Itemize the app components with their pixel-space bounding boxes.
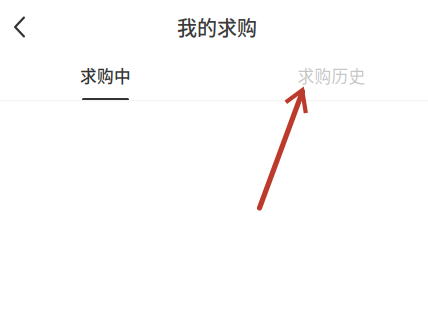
staticText: 求购中 (80, 63, 131, 88)
button[interactable]: 求购中 (30, 54, 180, 100)
staticText: 求购历史 (297, 63, 365, 88)
button[interactable]: 求购历史 (256, 54, 406, 100)
button[interactable]: Back (0, 5, 41, 49)
staticText: 我的求购 (177, 12, 257, 41)
